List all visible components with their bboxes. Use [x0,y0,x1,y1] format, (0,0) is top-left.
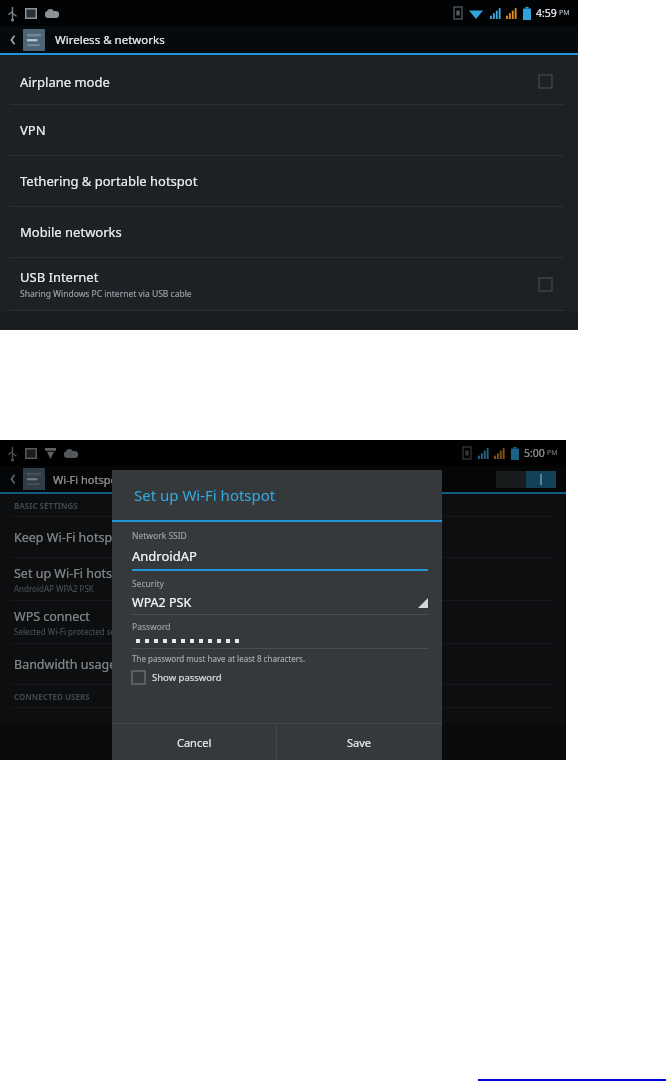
staticText: Wi-Fi hotspot [53,472,122,487]
button[interactable]: VPN [0,105,578,155]
button[interactable]: Toggle checkbox [537,276,554,293]
staticText: Save [347,735,372,750]
button[interactable]: App icon [23,29,45,51]
button[interactable]: Tethering & portable hotspot [0,156,578,206]
staticText: AndroidAP [132,547,197,565]
staticText: 5:00 [524,446,545,460]
button[interactable]: Airplane mode [0,59,578,104]
button[interactable]: WPS connect [0,601,566,643]
staticText: VPN [20,121,46,139]
staticText: WPA2 PSK [132,594,192,611]
button[interactable]: Toggle checkbox [537,73,554,90]
staticText: Tethering & portable hotspot [20,172,198,190]
button[interactable]: Navigate up [5,30,19,50]
button[interactable]: Mobile networks [0,207,578,257]
staticText: Cancel [177,735,212,750]
button[interactable]: Show password [132,671,222,684]
staticText: USB Internet [20,268,99,286]
staticText: AndroidAP WPA2 PSK [14,583,94,594]
staticText: WPS connect [14,608,90,625]
staticText: PM [559,8,570,18]
button[interactable]: Bandwidth usage [0,644,566,684]
staticText: The password must have at least 8 charac… [132,653,306,664]
staticText: Set up Wi-Fi hotspot [14,565,132,582]
button[interactable]: App icon [23,468,45,490]
button[interactable]: Wi-Fi hotspot on/off [496,471,556,488]
staticText: BASIC SETTINGS [14,500,78,511]
button[interactable]: Navigate up [5,469,19,489]
button[interactable]: USB Internet [0,258,578,310]
staticText: Network SSID [132,530,187,542]
staticText: Show password [152,671,222,684]
staticText: Security [132,578,164,590]
button[interactable]: WPA2 PSK [132,594,428,611]
staticText: PM [547,448,558,458]
button[interactable]: Keep Wi-Fi hotspot on [0,517,566,557]
staticText: Bandwidth usage [14,656,117,673]
button[interactable]: Cancel [112,724,276,760]
staticText: Set up Wi-Fi hotspot [134,485,276,505]
staticText: Password [132,621,171,633]
staticText: Selected Wi-Fi protected setup [14,626,128,637]
staticText: Airplane mode [20,73,110,91]
staticText: Mobile networks [20,223,122,241]
button[interactable]: Set up Wi-Fi hotspot [0,558,566,600]
staticText: Keep Wi-Fi hotspot on [14,529,143,546]
staticText: 4:59 [536,6,557,20]
staticText: Sharing Windows PC internet via USB cabl… [20,288,192,300]
staticText: CONNECTED USERS [14,691,90,702]
staticText: Wireless & networks [55,32,165,48]
button[interactable]: Save [277,724,442,760]
